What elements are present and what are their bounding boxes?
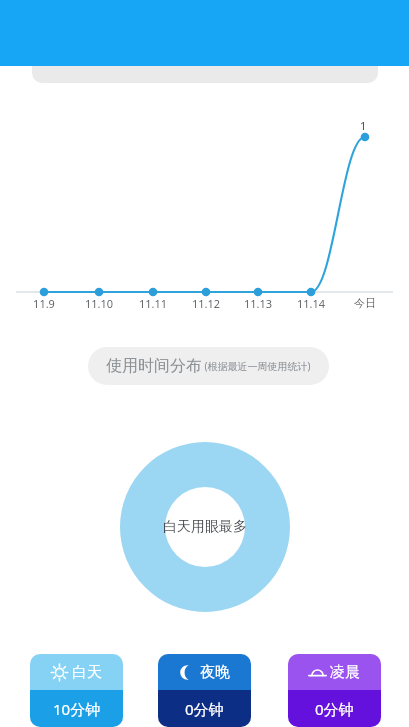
button[interactable]: 使用时间分布 (88, 347, 329, 385)
staticText: 今日 (339, 296, 391, 310)
staticText: 凌晨 (330, 663, 360, 682)
other: 白天 (51, 664, 68, 681)
other: 凌晨 (309, 664, 326, 681)
staticText: 11.12 (180, 296, 232, 311)
button[interactable]: 夜晚 (158, 654, 251, 727)
staticText: 0分钟 (315, 699, 354, 719)
staticText: 11.13 (232, 296, 284, 311)
staticText: 白天 (72, 663, 102, 682)
staticText: 夜晚 (200, 663, 230, 682)
staticText: 11.9 (18, 296, 70, 311)
button[interactable]: 白天 (30, 654, 123, 727)
staticText: (根据最近一周使用统计) (202, 359, 311, 373)
button[interactable]: 凌晨 (288, 654, 381, 727)
staticText: 11.14 (285, 296, 337, 311)
staticText: 1 (360, 118, 367, 133)
staticText: 11.10 (73, 296, 125, 311)
staticText: 0分钟 (185, 699, 224, 719)
staticText: 白天用眼最多 (163, 518, 247, 536)
staticText: 11.11 (127, 296, 179, 311)
other: 夜晚 (179, 664, 196, 681)
staticText: 使用时间分布 (106, 356, 202, 376)
staticText: 10分钟 (53, 699, 101, 719)
